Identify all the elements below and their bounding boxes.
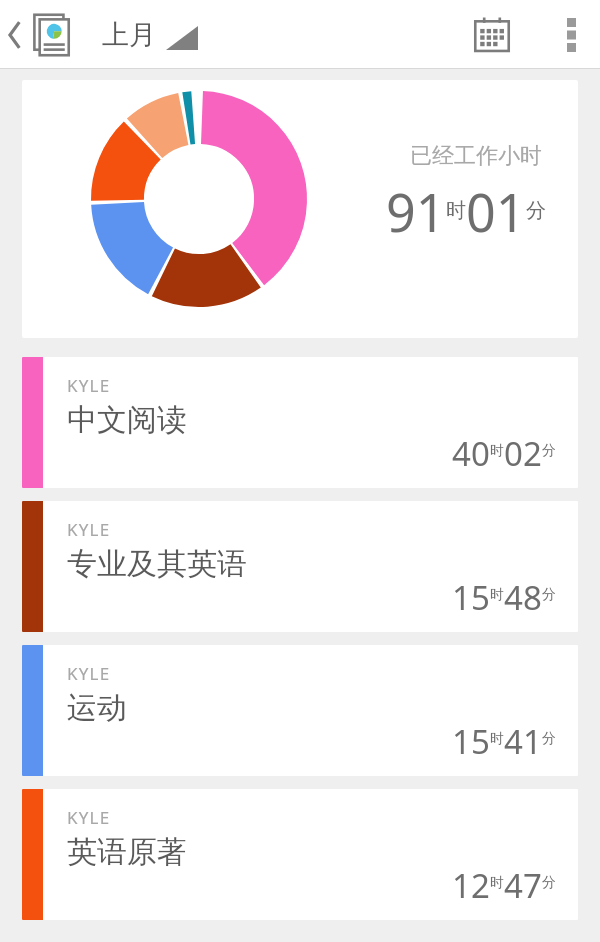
staticText: 运动 (67, 689, 127, 727)
staticText: 02 (504, 431, 542, 476)
staticText: 分 (542, 442, 556, 460)
staticText: 分 (542, 874, 556, 892)
button[interactable]: 上月 (98, 12, 202, 58)
staticText: 15 (452, 719, 490, 764)
staticText: 已经工作小时 (410, 142, 542, 170)
button[interactable]: 已经工作小时 (22, 80, 578, 338)
staticText: 分 (542, 730, 556, 748)
staticText: 91 (386, 176, 446, 247)
staticText: 40 (452, 431, 490, 476)
button[interactable]: KYLE (22, 789, 578, 920)
button[interactable]: KYLE (22, 645, 578, 776)
button[interactable]: KYLE (22, 501, 578, 632)
staticText: KYLE (67, 374, 111, 397)
button[interactable]: KYLE (22, 357, 578, 488)
staticText: 12 (452, 863, 490, 908)
staticText: 专业及其英语 (67, 545, 247, 583)
staticText: 时 (446, 198, 466, 223)
button[interactable]: Calendar (461, 4, 523, 66)
staticText: 时 (490, 874, 504, 892)
button[interactable]: Navigate up, reports (0, 12, 80, 58)
staticText: 48 (504, 575, 542, 620)
staticText: KYLE (67, 662, 111, 685)
staticText: KYLE (67, 806, 111, 829)
staticText: 中文阅读 (67, 401, 187, 439)
staticText: 41 (504, 719, 542, 764)
staticText: 上月 (102, 18, 156, 52)
staticText: KYLE (67, 518, 111, 541)
staticText: 47 (504, 863, 542, 908)
button[interactable]: More options (551, 6, 592, 64)
staticText: 英语原著 (67, 833, 187, 871)
staticText: 01 (466, 176, 526, 247)
staticText: 分 (542, 586, 556, 604)
staticText: 时 (490, 730, 504, 748)
staticText: 时 (490, 586, 504, 604)
staticText: 时 (490, 442, 504, 460)
staticText: 15 (452, 575, 490, 620)
staticText: 分 (526, 198, 546, 223)
